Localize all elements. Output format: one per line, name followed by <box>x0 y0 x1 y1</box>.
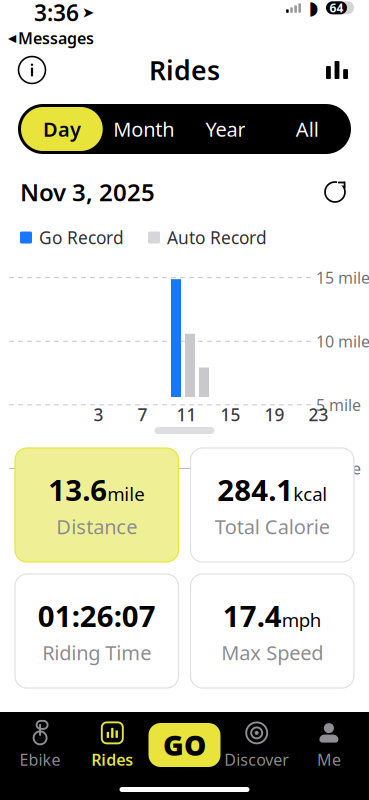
staticText: Rides <box>149 52 220 88</box>
staticText: Ebike <box>20 749 61 770</box>
staticText: Day <box>43 116 81 142</box>
staticText: Go Record <box>39 226 124 249</box>
button[interactable]: Refresh <box>317 174 353 210</box>
staticText: 15 mile <box>316 267 369 288</box>
button[interactable]: Discover <box>221 719 293 771</box>
staticText: 5 mile <box>316 394 361 415</box>
staticText: 284.1 <box>217 470 293 509</box>
staticText: Year <box>205 116 245 142</box>
staticText: Max Speed <box>221 639 323 666</box>
staticText: Month <box>113 116 174 142</box>
button[interactable]: 01:26:07 <box>15 574 178 688</box>
button[interactable]: All <box>266 107 348 151</box>
staticText: 23 <box>308 403 328 426</box>
staticText: ➤ <box>82 4 94 21</box>
staticText: 11 <box>176 403 196 426</box>
staticText: 01:26:07 <box>38 596 156 635</box>
button[interactable]: Day <box>21 107 103 151</box>
button[interactable]: 17.4 <box>190 574 354 688</box>
staticText: All <box>296 116 319 142</box>
staticText: mph <box>282 607 322 632</box>
staticText: Me <box>317 749 341 770</box>
button[interactable]: 13.6 <box>15 448 178 562</box>
staticText: Total Calorie <box>215 513 330 540</box>
staticText: 13.6 <box>48 470 107 509</box>
staticText: Riding Time <box>42 639 151 666</box>
staticText: 19 <box>264 403 284 426</box>
staticText: 64 <box>329 0 343 16</box>
staticText: Nov 3, 2025 <box>20 176 155 208</box>
staticText: ◀ <box>8 32 16 44</box>
staticText: 3 <box>93 403 103 426</box>
button[interactable]: Year <box>184 107 266 151</box>
staticText: 15 <box>220 403 240 426</box>
staticText: 7 <box>137 403 147 426</box>
staticText: Rides <box>91 749 133 770</box>
staticText: Messages <box>18 27 94 49</box>
staticText: 10 mile <box>316 331 369 352</box>
staticText: Discover <box>224 749 289 770</box>
button[interactable]: GO <box>148 723 220 767</box>
button[interactable]: Statistics <box>315 48 359 92</box>
button[interactable]: 284.1 <box>190 448 354 562</box>
button[interactable]: Information <box>10 48 54 92</box>
staticText: GO <box>163 726 206 764</box>
staticText: ◗ <box>308 0 318 18</box>
button[interactable]: Me <box>293 719 365 771</box>
button[interactable]: Month <box>103 107 185 151</box>
staticText: Distance <box>56 513 137 540</box>
button[interactable]: Ebike <box>4 719 76 771</box>
staticText: Auto Record <box>167 226 267 249</box>
button[interactable]: Rides <box>76 719 148 771</box>
staticText: kcal <box>293 481 327 506</box>
staticText: mile <box>107 481 145 506</box>
staticText: 3:36 <box>34 0 79 27</box>
staticText: 17.4 <box>223 596 282 635</box>
staticText: 0 mile <box>316 458 361 479</box>
